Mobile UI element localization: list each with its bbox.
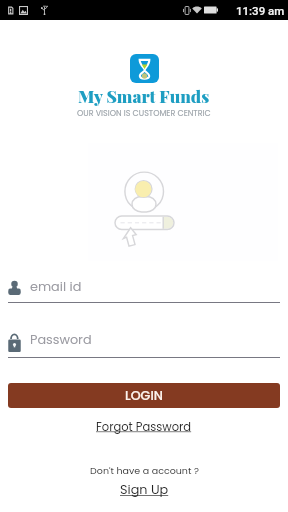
- button[interactable]: Password: [0, 328, 288, 359]
- staticText: OUR VISION IS CUSTOMER CENTRIC: [77, 108, 211, 119]
- staticText: Password: [30, 331, 92, 349]
- staticText: My Smart Funds: [78, 85, 210, 108]
- button[interactable]: Sign Up: [116, 480, 173, 500]
- staticText: Forgot Password: [96, 419, 192, 435]
- button[interactable]: email id: [0, 274, 288, 304]
- staticText: 11:39 am: [236, 4, 285, 17]
- staticText: LOGIN: [125, 387, 163, 405]
- button[interactable]: Forgot Password: [92, 418, 196, 436]
- staticText: Don't have a account ?: [90, 464, 199, 477]
- staticText: email id: [30, 278, 82, 296]
- staticText: Sign Up: [120, 481, 169, 499]
- button[interactable]: LOGIN: [8, 383, 280, 408]
